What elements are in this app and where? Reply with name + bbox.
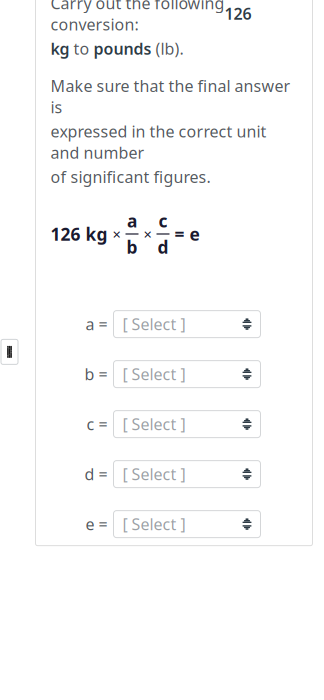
staticText: d xyxy=(157,236,168,259)
staticText: d = xyxy=(84,463,107,485)
staticText: [ Select ] xyxy=(122,513,185,535)
staticText: b xyxy=(126,236,137,259)
button[interactable]: [ Select ] xyxy=(113,411,260,438)
staticText: kg xyxy=(50,38,69,59)
button[interactable]: [ Select ] xyxy=(113,461,260,488)
staticText: of significant figures. xyxy=(50,166,210,187)
staticText: Make sure that the final answer is xyxy=(50,75,290,118)
staticText: b = xyxy=(84,363,107,385)
staticText: [ Select ] xyxy=(122,413,185,435)
staticText: e = xyxy=(85,513,107,535)
staticText: pounds xyxy=(93,38,151,59)
staticText: to xyxy=(69,38,93,59)
staticText: [ Select ] xyxy=(122,463,185,485)
button[interactable]: [ Select ] xyxy=(113,311,260,338)
staticText: (lb). xyxy=(151,38,183,59)
staticText: = e xyxy=(174,222,199,245)
staticText: expressed in the correct unit and number xyxy=(50,121,266,163)
staticText: × xyxy=(112,224,120,244)
staticText: c xyxy=(158,209,167,232)
staticText: × xyxy=(143,224,151,244)
button[interactable]: [ Select ] xyxy=(113,511,260,538)
button[interactable]: Open question navigator xyxy=(1,339,18,364)
staticText: [ Select ] xyxy=(122,313,185,335)
staticText: a xyxy=(127,209,137,232)
staticText: c = xyxy=(86,413,107,435)
staticText: a = xyxy=(85,313,107,335)
staticText: 126 xyxy=(224,3,251,24)
button[interactable]: [ Select ] xyxy=(113,361,260,388)
staticText: Carry out the following conversion: xyxy=(50,0,224,35)
staticText: 126 kg xyxy=(50,222,107,245)
staticText: [ Select ] xyxy=(122,363,185,385)
